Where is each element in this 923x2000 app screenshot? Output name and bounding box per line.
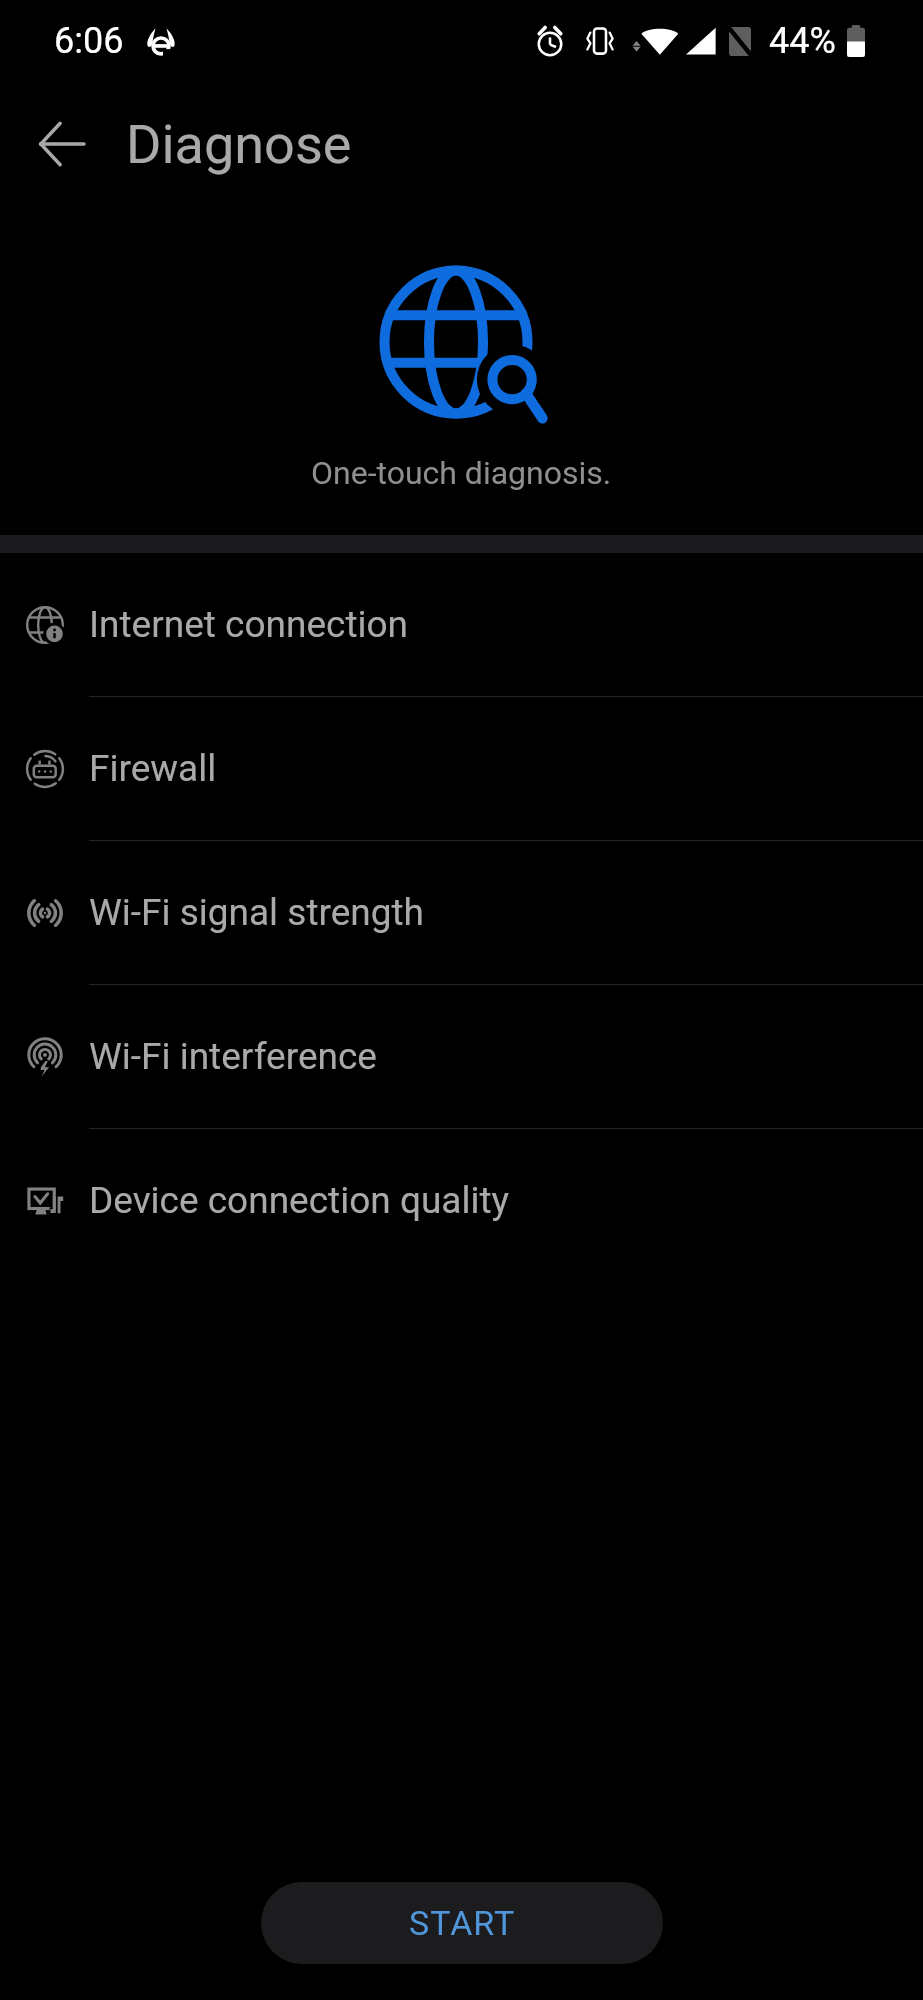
button[interactable]: Firewall [0, 697, 923, 840]
staticText: Wi-Fi signal strength [89, 891, 424, 934]
button[interactable]: Wi-Fi signal strength [0, 841, 923, 984]
staticText: Firewall [89, 747, 217, 790]
staticText: One-touch diagnosis. [311, 454, 612, 492]
button[interactable]: Back [10, 92, 114, 196]
staticText: Internet connection [89, 603, 409, 646]
staticText: 6:06 [54, 20, 124, 62]
staticText: Wi-Fi interference [89, 1035, 377, 1078]
staticText: 44% [769, 20, 836, 62]
button[interactable]: START [261, 1882, 663, 1964]
button[interactable]: Wi-Fi interference [0, 985, 923, 1128]
button[interactable]: Internet connection [0, 553, 923, 696]
staticText: Diagnose [126, 113, 352, 176]
staticText: Device connection quality [89, 1179, 510, 1222]
staticText: START [409, 1903, 516, 1943]
button[interactable]: Device connection quality [0, 1129, 923, 1272]
